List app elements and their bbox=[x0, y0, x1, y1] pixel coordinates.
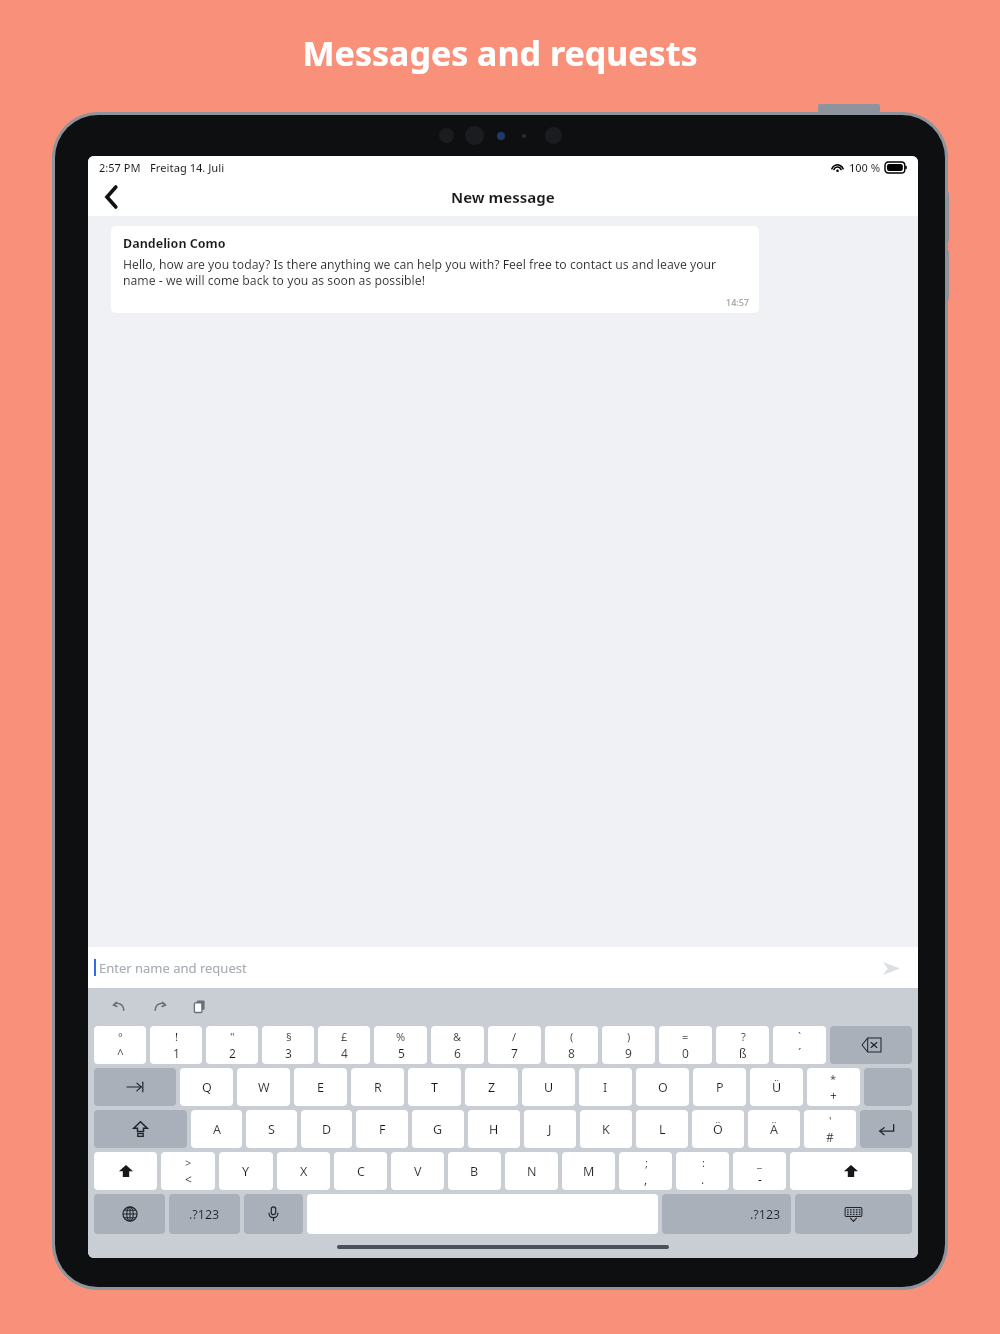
staticText: Ä bbox=[770, 1121, 778, 1138]
button[interactable]: X bbox=[277, 1152, 330, 1190]
button[interactable]: H bbox=[468, 1110, 520, 1148]
button[interactable]: ° bbox=[94, 1026, 146, 1064]
button[interactable]: U bbox=[522, 1068, 575, 1106]
button[interactable]: 🎤 bbox=[244, 1194, 303, 1234]
staticText: % bbox=[396, 1029, 406, 1044]
button[interactable]: 🌐 bbox=[94, 1194, 165, 1234]
staticText: K bbox=[602, 1121, 610, 1138]
staticText: Enter name and request bbox=[99, 959, 247, 977]
button[interactable]: .?123 bbox=[662, 1194, 791, 1234]
button[interactable]: N bbox=[505, 1152, 558, 1190]
staticText: W bbox=[258, 1079, 270, 1096]
button[interactable]: ⬆ bbox=[94, 1152, 157, 1190]
staticText: ? bbox=[741, 1029, 746, 1044]
staticText: * bbox=[830, 1071, 837, 1086]
button[interactable]: Ö bbox=[692, 1110, 744, 1148]
button[interactable]: * bbox=[807, 1068, 860, 1106]
button[interactable]: ( bbox=[545, 1026, 598, 1064]
button[interactable]: Undo bbox=[106, 993, 132, 1019]
button[interactable]: ⬆ bbox=[790, 1152, 912, 1190]
button[interactable]: ; bbox=[619, 1152, 672, 1190]
staticText: G bbox=[433, 1121, 443, 1138]
button[interactable]: / bbox=[488, 1026, 541, 1064]
button[interactable]: L bbox=[636, 1110, 688, 1148]
button[interactable]: Y bbox=[219, 1152, 273, 1190]
staticText: I bbox=[603, 1079, 608, 1096]
button[interactable]: W bbox=[237, 1068, 290, 1106]
button[interactable]: Q bbox=[180, 1068, 233, 1106]
staticText: 2:57 PM bbox=[99, 160, 141, 175]
staticText: ^ bbox=[117, 1045, 124, 1061]
button[interactable]: £ bbox=[318, 1026, 370, 1064]
button[interactable]: R bbox=[351, 1068, 404, 1106]
button[interactable]: ! bbox=[150, 1026, 202, 1064]
button[interactable]: % bbox=[374, 1026, 427, 1064]
button[interactable]: C bbox=[334, 1152, 387, 1190]
button[interactable]: F bbox=[356, 1110, 408, 1148]
button[interactable]: Ä bbox=[748, 1110, 800, 1148]
staticText: U bbox=[544, 1079, 554, 1096]
button[interactable]: Paste bbox=[186, 993, 212, 1019]
button[interactable]: Redo bbox=[146, 993, 172, 1019]
staticText: / bbox=[512, 1029, 517, 1044]
staticText: . bbox=[701, 1171, 705, 1187]
staticText: + bbox=[830, 1087, 837, 1103]
button[interactable]: B bbox=[448, 1152, 501, 1190]
staticText: X bbox=[300, 1163, 308, 1180]
button[interactable]: V bbox=[391, 1152, 444, 1190]
button[interactable]: E bbox=[294, 1068, 347, 1106]
button[interactable]: ⇥ bbox=[94, 1068, 176, 1106]
staticText: V bbox=[414, 1163, 422, 1180]
button[interactable]: K bbox=[580, 1110, 632, 1148]
button[interactable]: ⌫ bbox=[830, 1026, 912, 1064]
button[interactable]: A bbox=[191, 1110, 242, 1148]
staticText: F bbox=[379, 1121, 386, 1138]
button[interactable]: § bbox=[262, 1026, 314, 1064]
button[interactable]: _ bbox=[733, 1152, 786, 1190]
button[interactable]: Enter name and request bbox=[96, 947, 878, 988]
button[interactable]: " bbox=[206, 1026, 258, 1064]
button[interactable]: T bbox=[408, 1068, 461, 1106]
button[interactable]: ⇪ bbox=[94, 1110, 187, 1148]
button[interactable]: Ü bbox=[750, 1068, 803, 1106]
button[interactable]: D bbox=[301, 1110, 352, 1148]
button[interactable]: M bbox=[562, 1152, 615, 1190]
button[interactable]: = bbox=[659, 1026, 712, 1064]
button[interactable]: Z bbox=[465, 1068, 518, 1106]
button[interactable]: S bbox=[246, 1110, 297, 1148]
staticText: ! bbox=[175, 1029, 178, 1044]
button[interactable]: P bbox=[693, 1068, 746, 1106]
staticText: J bbox=[548, 1121, 552, 1138]
button[interactable]: Dandelion Como bbox=[111, 226, 759, 313]
button[interactable]: > bbox=[161, 1152, 215, 1190]
button[interactable]: : bbox=[676, 1152, 729, 1190]
button[interactable]: G bbox=[412, 1110, 464, 1148]
button[interactable]: ⌨ bbox=[795, 1194, 912, 1234]
staticText: O bbox=[658, 1079, 668, 1096]
button[interactable]: ⏎ bbox=[860, 1110, 912, 1148]
button[interactable]: Back bbox=[88, 178, 136, 216]
staticText: R bbox=[374, 1079, 382, 1096]
staticText: & bbox=[453, 1029, 462, 1044]
staticText: Ü bbox=[772, 1079, 782, 1096]
button[interactable]: O bbox=[636, 1068, 689, 1106]
staticText: Q bbox=[202, 1079, 212, 1096]
button[interactable]: J bbox=[524, 1110, 576, 1148]
staticText: ( bbox=[570, 1029, 574, 1044]
button[interactable]: ' bbox=[804, 1110, 856, 1148]
button[interactable]: ` bbox=[773, 1026, 826, 1064]
staticText: C bbox=[357, 1163, 365, 1180]
button[interactable]: ) bbox=[602, 1026, 655, 1064]
staticText: § bbox=[286, 1029, 292, 1044]
staticText: ´ bbox=[798, 1045, 802, 1061]
button[interactable]: .?123 bbox=[169, 1194, 240, 1234]
staticText: Messages and requests bbox=[0, 30, 1000, 76]
staticText: Freitag 14. Juli bbox=[150, 160, 225, 175]
button[interactable]: I bbox=[579, 1068, 632, 1106]
button[interactable]: ? bbox=[716, 1026, 769, 1064]
staticText: H bbox=[489, 1121, 499, 1138]
button[interactable]: & bbox=[431, 1026, 484, 1064]
button[interactable]: Send bbox=[878, 955, 904, 981]
